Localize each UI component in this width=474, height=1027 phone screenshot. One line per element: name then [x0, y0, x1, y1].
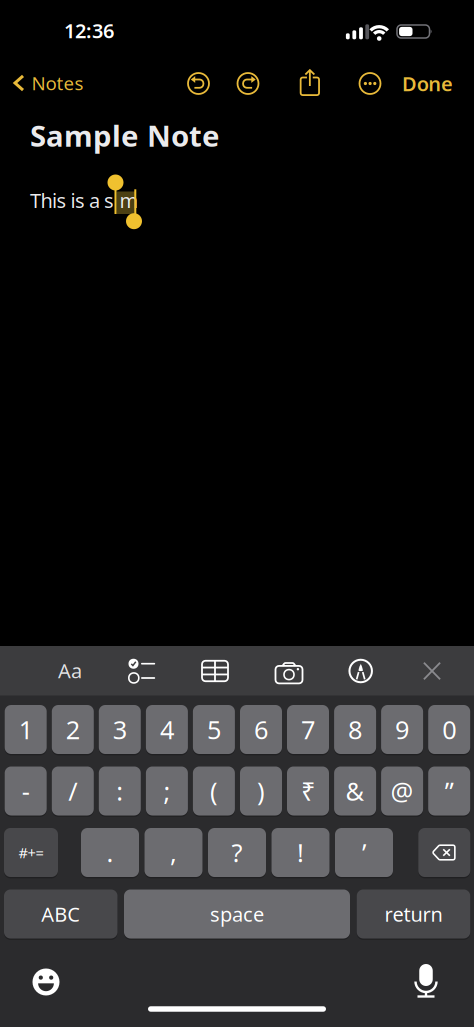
- staticText: .: [106, 836, 113, 869]
- staticText: :: [116, 774, 123, 808]
- button[interactable]: ,: [144, 827, 202, 878]
- button[interactable]: &: [334, 765, 376, 816]
- staticText: /: [68, 774, 77, 808]
- staticText: 3: [113, 713, 127, 746]
- button[interactable]: Dictation: [414, 964, 438, 998]
- staticText: #+=: [18, 843, 43, 862]
- staticText: Notes: [31, 71, 83, 95]
- staticText: 1: [19, 713, 33, 746]
- button[interactable]: #+=: [4, 827, 58, 878]
- button[interactable]: Done: [402, 70, 453, 97]
- button[interactable]: Emoji: [32, 968, 59, 995]
- staticText: &: [346, 774, 365, 808]
- staticText: ABC: [41, 901, 80, 927]
- staticText: 2: [66, 713, 80, 746]
- button[interactable]: 8: [334, 704, 376, 755]
- button[interactable]: return: [357, 888, 470, 939]
- staticText: 6: [254, 713, 268, 746]
- button[interactable]: (: [193, 765, 235, 816]
- button[interactable]: 3: [99, 704, 141, 755]
- staticText: 4: [160, 713, 174, 746]
- button[interactable]: ”: [428, 765, 470, 816]
- button[interactable]: /: [52, 765, 94, 816]
- button[interactable]: Checklist: [128, 659, 155, 683]
- button[interactable]: Markup: [349, 660, 372, 682]
- staticText: m: [119, 187, 138, 214]
- button[interactable]: 2: [52, 704, 94, 755]
- staticText: 9: [395, 713, 409, 746]
- staticText: ”: [445, 774, 454, 808]
- button[interactable]: Delete: [418, 827, 470, 878]
- staticText: !: [297, 836, 304, 869]
- button[interactable]: @: [381, 765, 423, 816]
- staticText: Aa: [58, 657, 82, 684]
- button[interactable]: 4: [146, 704, 188, 755]
- button[interactable]: ;: [146, 765, 188, 816]
- staticText: Sample Note: [30, 116, 220, 155]
- staticText: 7: [301, 713, 315, 746]
- button[interactable]: Camera: [275, 661, 302, 682]
- staticText: 8: [348, 713, 362, 746]
- button[interactable]: :: [99, 765, 141, 816]
- button[interactable]: More: [359, 73, 380, 94]
- button[interactable]: 7: [287, 704, 329, 755]
- button[interactable]: Notes: [13, 71, 83, 95]
- button[interactable]: 0: [428, 704, 470, 755]
- button[interactable]: 6: [240, 704, 282, 755]
- staticText: ): [257, 774, 265, 808]
- staticText: 5: [207, 713, 221, 746]
- staticText: ,: [170, 836, 177, 869]
- staticText: ’: [362, 836, 366, 869]
- staticText: -: [22, 774, 30, 808]
- staticText: space: [210, 901, 264, 927]
- staticText: Done: [402, 70, 453, 97]
- staticText: This is a s: [30, 187, 114, 214]
- button[interactable]: ’: [335, 827, 393, 878]
- button[interactable]: ?: [208, 827, 266, 878]
- button[interactable]: Dismiss keyboard: [423, 661, 441, 680]
- button[interactable]: 5: [193, 704, 235, 755]
- staticText: return: [384, 901, 442, 927]
- button[interactable]: !: [271, 827, 329, 878]
- button[interactable]: 9: [381, 704, 423, 755]
- button[interactable]: ₹: [287, 765, 329, 816]
- staticText: ;: [163, 774, 170, 808]
- button[interactable]: -: [5, 765, 47, 816]
- staticText: ₹: [301, 774, 315, 808]
- button[interactable]: ): [240, 765, 282, 816]
- button[interactable]: .: [81, 827, 139, 878]
- button[interactable]: Redo: [237, 73, 258, 94]
- button[interactable]: Undo: [188, 73, 209, 94]
- staticText: @: [391, 774, 414, 808]
- button[interactable]: 1: [5, 704, 47, 755]
- button[interactable]: Share: [300, 69, 320, 95]
- button[interactable]: Table: [202, 661, 228, 681]
- staticText: 0: [442, 713, 456, 746]
- button[interactable]: ABC: [4, 888, 117, 939]
- button[interactable]: space: [124, 888, 350, 939]
- button[interactable]: Format: [58, 657, 82, 684]
- staticText: (: [210, 774, 218, 808]
- staticText: ?: [231, 836, 242, 869]
- staticText: 12:36: [64, 17, 114, 44]
